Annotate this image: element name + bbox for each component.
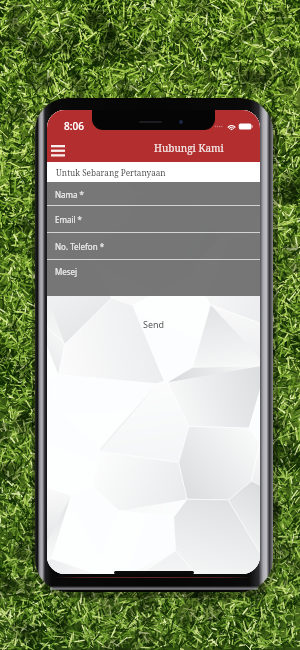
staticText: Hubungi Kami bbox=[154, 141, 224, 155]
button[interactable]: No. Telefon * bbox=[47, 233, 260, 260]
button[interactable]: Mesej bbox=[47, 260, 260, 296]
staticText: Email * bbox=[55, 214, 83, 225]
staticText: 8:06 bbox=[64, 119, 84, 133]
staticText: Nama * bbox=[55, 189, 85, 200]
button[interactable]: Open navigation menu bbox=[47, 140, 69, 162]
button[interactable]: Send bbox=[47, 296, 260, 352]
button[interactable]: Email * bbox=[47, 206, 260, 233]
staticText: Untuk Sebarang Pertanyaan bbox=[56, 167, 166, 178]
staticText: Mesej bbox=[55, 266, 78, 277]
staticText: Send bbox=[143, 318, 165, 330]
staticText: No. Telefon * bbox=[55, 241, 105, 252]
button[interactable]: Nama * bbox=[47, 182, 260, 206]
